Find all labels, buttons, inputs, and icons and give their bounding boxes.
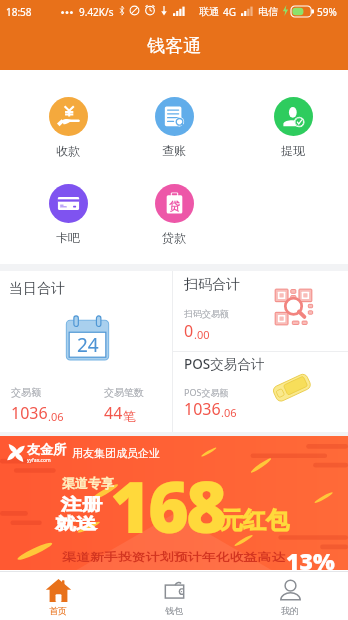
staticText: 交易额 xyxy=(11,386,41,399)
staticText: 18:58 xyxy=(6,5,32,19)
staticText: .06 xyxy=(48,409,64,424)
staticText: 扫码合计 xyxy=(184,276,240,294)
staticText: 联通 xyxy=(199,5,219,18)
button[interactable]: 友金所 xyxy=(0,436,348,570)
staticText: 贷款 xyxy=(162,230,186,245)
button[interactable]: 查账 xyxy=(146,97,202,158)
button[interactable]: 我的 xyxy=(232,572,348,620)
staticText: 渠道新手投资计划预计年化收益高达 xyxy=(62,550,285,564)
staticText: POS交易额 xyxy=(184,386,229,398)
staticText: 扫码交易额 xyxy=(184,308,229,319)
staticText: 贷 xyxy=(169,199,180,213)
staticText: 友金所 xyxy=(27,441,66,457)
staticText: yyfax.com xyxy=(27,457,51,464)
staticText: 168 xyxy=(110,458,225,553)
staticText: POS交易合计 xyxy=(184,355,265,373)
staticText: 24 xyxy=(77,332,99,358)
staticText: 交易笔数 xyxy=(104,386,144,399)
staticText: 13% xyxy=(286,545,335,576)
staticText: 就送 xyxy=(55,514,97,534)
staticText: .00 xyxy=(194,327,210,342)
button[interactable]: 贷 xyxy=(146,184,202,245)
staticText: 提现 xyxy=(281,143,305,158)
staticText: 用友集团成员企业 xyxy=(72,446,160,460)
staticText: 9.42K/s xyxy=(79,5,114,19)
staticText: 1036 xyxy=(11,402,48,424)
staticText: 钱包 xyxy=(165,605,183,616)
staticText: 元红包 xyxy=(220,506,289,535)
staticText: .06 xyxy=(221,405,237,420)
staticText: 1036 xyxy=(184,398,221,420)
staticText: 电信 xyxy=(258,5,278,18)
staticText: 首页 xyxy=(49,605,67,616)
staticText: 查账 xyxy=(162,143,186,158)
staticText: 我的 xyxy=(281,605,299,616)
button[interactable]: 收款 xyxy=(40,97,96,158)
staticText: 笔 xyxy=(123,408,136,424)
staticText: 卡吧 xyxy=(56,230,80,245)
button[interactable]: 卡吧 xyxy=(40,184,96,245)
button[interactable]: 首页 xyxy=(0,572,116,620)
staticText: 注册 xyxy=(61,495,103,515)
staticText: 59% xyxy=(317,5,337,19)
staticText: 0 xyxy=(184,320,194,342)
button[interactable]: 钱包 xyxy=(116,572,232,620)
staticText: 44 xyxy=(104,402,123,424)
staticText: 4G xyxy=(223,5,236,19)
staticText: 钱客通 xyxy=(147,35,201,58)
staticText: 收款 xyxy=(56,143,80,158)
staticText: 当日合计 xyxy=(9,280,65,298)
button[interactable]: 提现 xyxy=(265,97,321,158)
staticText: 渠道专享 xyxy=(62,475,114,491)
